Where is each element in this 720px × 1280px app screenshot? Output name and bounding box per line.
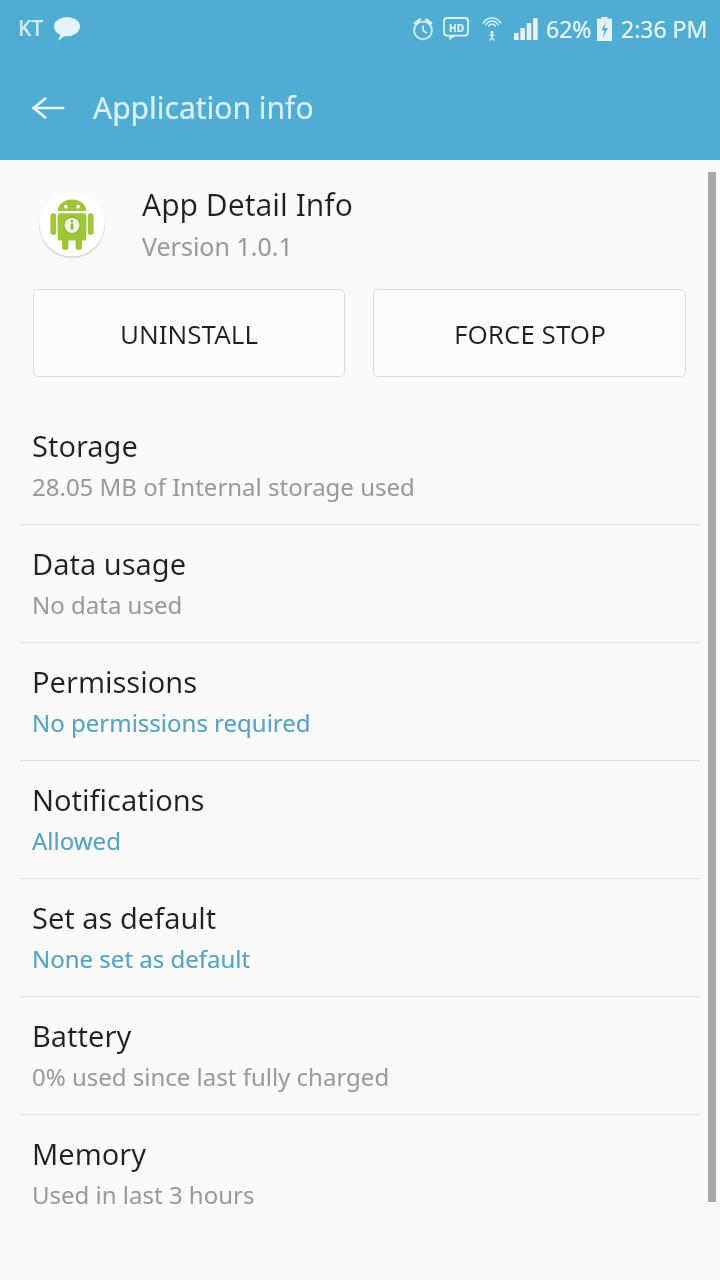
staticText: Used in last 3 hours bbox=[32, 1178, 255, 1211]
button[interactable]: UNINSTALL bbox=[33, 289, 345, 377]
staticText: Allowed bbox=[32, 824, 121, 857]
staticText: Set as default bbox=[32, 898, 217, 937]
staticText: Permissions bbox=[32, 662, 198, 701]
button[interactable]: Notifications bbox=[0, 761, 720, 878]
button[interactable]: Data usage bbox=[0, 525, 720, 642]
button[interactable]: Storage bbox=[0, 407, 720, 524]
button[interactable]: Memory bbox=[0, 1115, 720, 1232]
staticText: Memory bbox=[32, 1134, 147, 1173]
staticText: HD bbox=[449, 21, 464, 35]
button[interactable]: Permissions bbox=[0, 643, 720, 760]
staticText: No permissions required bbox=[32, 706, 311, 739]
staticText: Notifications bbox=[32, 780, 205, 819]
button[interactable]: Navigate up bbox=[18, 78, 78, 138]
staticText: No data used bbox=[32, 588, 183, 621]
staticText: Storage bbox=[32, 426, 138, 465]
staticText: 62% bbox=[546, 13, 592, 44]
staticText: Data usage bbox=[32, 544, 186, 583]
staticText: Version 1.0.1 bbox=[142, 229, 293, 263]
staticText: App Detail Info bbox=[142, 184, 353, 225]
staticText: UNINSTALL bbox=[120, 316, 259, 351]
staticText: 28.05 MB of Internal storage used bbox=[32, 470, 415, 503]
staticText: None set as default bbox=[32, 942, 251, 975]
button[interactable]: FORCE STOP bbox=[373, 289, 686, 377]
staticText: 0% used since last fully charged bbox=[32, 1060, 390, 1093]
staticText: FORCE STOP bbox=[454, 316, 606, 351]
staticText: Application info bbox=[93, 87, 314, 128]
button[interactable]: Set as default bbox=[0, 879, 720, 996]
staticText: Battery bbox=[32, 1016, 132, 1055]
staticText: KT bbox=[18, 14, 44, 43]
staticText: 2:36 PM bbox=[621, 13, 708, 44]
button[interactable]: Battery bbox=[0, 997, 720, 1114]
